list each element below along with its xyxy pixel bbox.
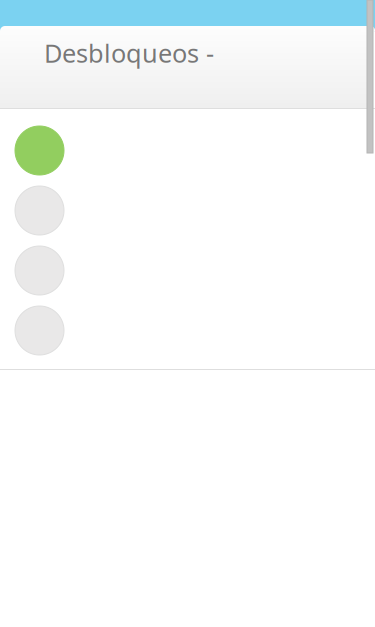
staticText: Desbloqueos -: [44, 36, 214, 70]
button[interactable]: Logro bloqueado: [15, 246, 64, 295]
button[interactable]: Logro desbloqueado: [15, 126, 64, 175]
button[interactable]: Logro bloqueado: [15, 186, 64, 235]
button[interactable]: Logro bloqueado: [15, 306, 64, 355]
